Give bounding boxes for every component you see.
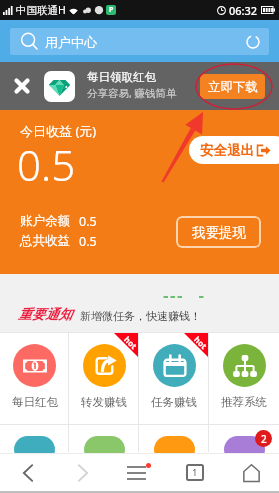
staticText: 今日收益 (元) xyxy=(20,122,97,140)
button[interactable]: Tabs xyxy=(167,454,223,491)
staticText: 每日红包 xyxy=(12,395,58,409)
staticText: 账户余额 xyxy=(20,213,70,229)
button[interactable]: Menu xyxy=(111,454,167,491)
staticText: 任务赚钱 xyxy=(151,395,197,409)
button[interactable]: Home xyxy=(223,454,279,491)
staticText: 中国联通H xyxy=(16,3,66,17)
button[interactable]: Back xyxy=(0,454,55,491)
button[interactable]: 推荐系统 xyxy=(209,333,279,424)
button[interactable]: 用户中心 xyxy=(10,28,269,55)
button[interactable]: 每日红包 xyxy=(0,333,69,424)
staticText: 0.5 xyxy=(79,213,97,230)
staticText: 每日领取红包 xyxy=(87,70,156,84)
staticText: 我要提现 xyxy=(192,224,246,241)
button[interactable]: Forward xyxy=(55,454,111,491)
button[interactable]: 安全退出 xyxy=(189,136,279,164)
button[interactable] xyxy=(139,425,209,452)
button[interactable]: 立即下载 xyxy=(200,74,265,99)
staticText: 06:32 xyxy=(229,3,258,18)
staticText: 转发赚钱 xyxy=(81,395,127,409)
button[interactable]: 2 xyxy=(209,425,279,452)
staticText: 立即下载 xyxy=(208,79,258,95)
staticText: 总共收益 xyxy=(20,233,70,249)
staticText: 0.5 xyxy=(79,233,97,250)
staticText: 安全退出 xyxy=(200,142,254,159)
staticText: 推荐系统 xyxy=(221,395,267,409)
button[interactable] xyxy=(0,425,69,452)
staticText: 0.5 xyxy=(17,136,76,193)
button[interactable]: 我要提现 xyxy=(176,216,261,248)
staticText: 新增微任务，快速赚钱！ xyxy=(80,309,201,323)
button[interactable]: 任务赚钱 xyxy=(139,333,209,424)
staticText: hot xyxy=(192,334,210,351)
button[interactable] xyxy=(69,425,139,452)
staticText: 分享容易, 赚钱简单 xyxy=(87,86,177,100)
staticText: 2 xyxy=(261,432,267,446)
staticText: 重要通知 xyxy=(18,306,72,323)
button[interactable]: 转发赚钱 xyxy=(69,333,139,424)
staticText: hot xyxy=(122,334,140,351)
button[interactable]: Close ad xyxy=(0,62,44,110)
staticText: 1 xyxy=(192,466,198,479)
staticText: P xyxy=(109,5,114,15)
staticText: 用户中心 xyxy=(45,34,97,50)
